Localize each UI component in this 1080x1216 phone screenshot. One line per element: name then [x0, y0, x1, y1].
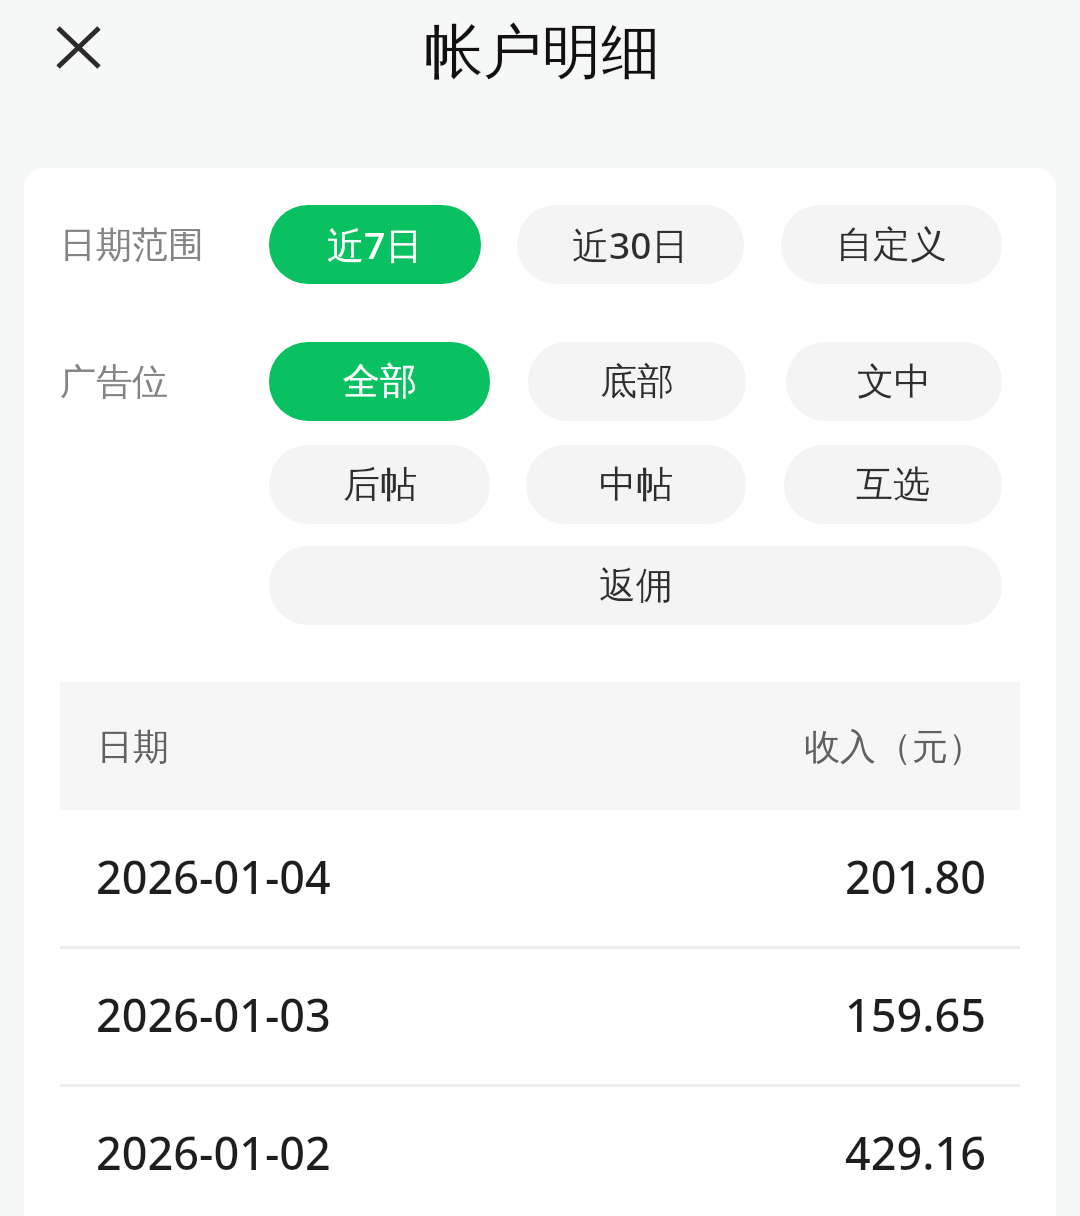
staticText: 429.16 [845, 1122, 986, 1183]
staticText: 201.80 [845, 846, 986, 907]
staticText: 日期范围 [60, 222, 204, 267]
button[interactable]: 2026-01-03 [24, 948, 1056, 1086]
staticText: 近30日 [572, 219, 689, 270]
button[interactable]: 中帖 [526, 445, 746, 524]
button[interactable]: 2026-01-04 [24, 810, 1056, 948]
staticText: 广告位 [60, 359, 168, 404]
staticText: 近7日 [327, 219, 423, 270]
staticText: 全部 [343, 358, 417, 405]
staticText: 159.65 [845, 984, 986, 1045]
staticText: 中帖 [599, 461, 673, 508]
button[interactable]: 近7日 [269, 205, 481, 284]
button[interactable]: 全部 [269, 342, 490, 421]
staticText: 2026-01-02 [96, 1122, 331, 1183]
staticText: 收入（元） [804, 724, 984, 769]
button[interactable]: 返佣 [269, 546, 1002, 625]
staticText: 文中 [857, 358, 931, 405]
staticText: 后帖 [343, 461, 417, 508]
staticText: 帐户明细 [2, 15, 1080, 89]
staticText: 返佣 [599, 562, 673, 609]
staticText: 自定义 [836, 221, 947, 268]
button[interactable]: 近30日 [517, 205, 744, 284]
button[interactable]: 自定义 [781, 205, 1002, 284]
staticText: 底部 [600, 358, 674, 405]
staticText: 互选 [856, 461, 930, 508]
staticText: 日期 [97, 724, 169, 769]
button[interactable]: 后帖 [269, 445, 490, 524]
button[interactable]: 2026-01-02 [24, 1086, 1056, 1216]
button[interactable]: 文中 [786, 342, 1002, 421]
button[interactable]: 底部 [528, 342, 746, 421]
staticText: 2026-01-04 [96, 846, 331, 907]
button[interactable]: 互选 [784, 445, 1002, 524]
staticText: 2026-01-03 [96, 984, 331, 1045]
button[interactable]: Close [30, 0, 126, 95]
